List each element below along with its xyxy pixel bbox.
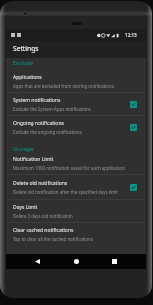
staticText: Apps that are excluded from storing noti… bbox=[13, 83, 115, 89]
staticText: Ongoing notifications bbox=[13, 120, 64, 127]
staticText: 12:13 bbox=[125, 32, 137, 38]
staticText: Delete 3 days old notification bbox=[13, 213, 73, 219]
staticText: Settings bbox=[13, 44, 39, 53]
button[interactable]: Delete old notifications bbox=[6, 175, 146, 199]
button[interactable]: Applications bbox=[6, 70, 146, 92]
staticText: Maximum 1000 notification saved for each… bbox=[13, 165, 125, 171]
staticText: Exclude the System Apps notifications bbox=[13, 106, 91, 112]
button[interactable]: Recents bbox=[107, 254, 122, 269]
staticText: Clear cached notifications bbox=[13, 227, 74, 234]
staticText: Tap to clear all the cached notification… bbox=[13, 236, 93, 242]
staticText: Delete old notifications bbox=[13, 180, 68, 187]
button[interactable]: Home bbox=[69, 254, 84, 269]
staticText: Applications bbox=[13, 74, 42, 81]
staticText: System notifications bbox=[13, 97, 61, 104]
staticText: Exclude the ongoing notifications bbox=[13, 129, 82, 135]
staticText: Storage bbox=[13, 145, 34, 152]
button[interactable]: System notifications bbox=[6, 93, 146, 115]
button[interactable]: Ongoing notifications bbox=[6, 116, 146, 138]
staticText: Notification Limit bbox=[13, 156, 54, 163]
button[interactable]: Back bbox=[30, 254, 45, 269]
button[interactable]: Clear cached notifications bbox=[6, 223, 146, 245]
button[interactable]: Notification Limit bbox=[6, 152, 146, 174]
staticText: Exclude bbox=[13, 59, 34, 66]
staticText: Days Limit bbox=[13, 204, 38, 211]
button[interactable]: Days Limit bbox=[6, 200, 146, 222]
staticText: Delete old notification after the specif… bbox=[13, 189, 118, 195]
